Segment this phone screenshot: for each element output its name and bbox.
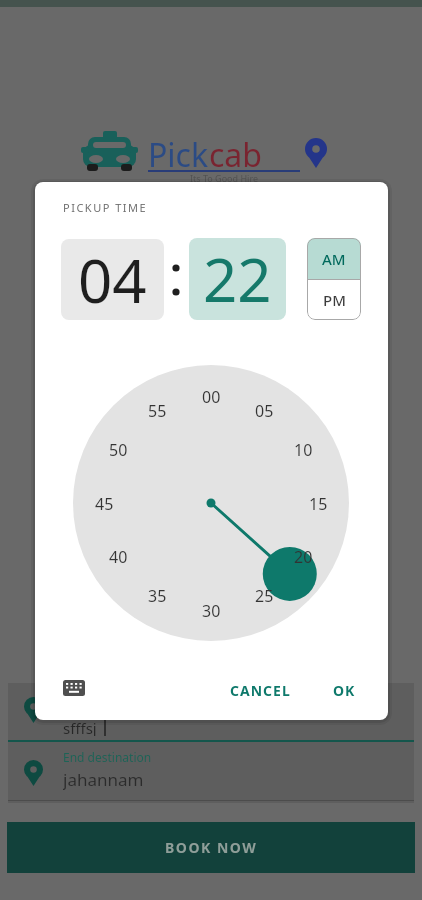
button[interactable]: 22 bbox=[189, 238, 286, 320]
staticText: 22 bbox=[203, 238, 272, 320]
staticText: cab bbox=[209, 133, 262, 177]
staticText: sfffsj bbox=[63, 718, 97, 736]
staticText: jahannam bbox=[63, 768, 144, 790]
staticText: 30 bbox=[202, 600, 221, 620]
staticText: 35 bbox=[148, 585, 167, 605]
staticText: 55 bbox=[148, 400, 167, 420]
staticText: 40 bbox=[109, 546, 128, 566]
button[interactable]: BOOK NOW bbox=[7, 822, 415, 873]
staticText: 25 bbox=[255, 585, 274, 605]
staticText: PICKUP TIME bbox=[63, 200, 148, 215]
button[interactable]: jahannam bbox=[63, 768, 203, 790]
staticText: Its To Good Hire bbox=[190, 172, 259, 184]
staticText: PM bbox=[323, 290, 346, 310]
button[interactable]: 04 bbox=[61, 239, 164, 320]
staticText: 50 bbox=[109, 439, 128, 459]
button[interactable]: CANCEL bbox=[215, 676, 305, 704]
staticText: 04 bbox=[78, 239, 147, 320]
button[interactable]: sfffsj bbox=[63, 718, 143, 736]
staticText: 00 bbox=[202, 386, 221, 406]
button[interactable]: PM bbox=[307, 280, 361, 320]
button[interactable] bbox=[59, 674, 89, 702]
staticText: 10 bbox=[294, 439, 313, 459]
button[interactable]: AM bbox=[307, 238, 361, 279]
staticText: 15 bbox=[309, 493, 328, 513]
staticText: 20 bbox=[294, 546, 313, 566]
staticText: 05 bbox=[255, 400, 274, 420]
staticText: Pick bbox=[148, 133, 209, 177]
staticText: CANCEL bbox=[230, 681, 291, 700]
staticText: End destination bbox=[63, 749, 152, 764]
staticText: AM bbox=[322, 249, 346, 269]
button[interactable]: OK bbox=[319, 676, 369, 704]
staticText: OK bbox=[333, 681, 356, 700]
staticText: BOOK NOW bbox=[165, 838, 258, 857]
staticText: 45 bbox=[95, 493, 114, 513]
